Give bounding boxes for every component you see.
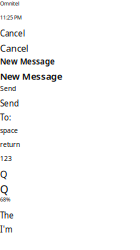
staticText: Cancel: [0, 42, 28, 54]
staticText: Send: [0, 84, 16, 93]
staticText: Q: [0, 168, 7, 180]
staticText: Q: [0, 182, 8, 196]
staticText: space: [0, 126, 18, 135]
staticText: 123: [0, 154, 12, 163]
staticText: 68%: [0, 196, 10, 203]
staticText: New Message: [0, 56, 55, 67]
staticText: To:: [0, 112, 11, 123]
staticText: Omnitel: [0, 0, 19, 7]
staticText: 11:25 PM: [0, 14, 22, 21]
staticText: I'm: [0, 224, 12, 235]
staticText: Send: [0, 98, 19, 109]
staticText: return: [0, 140, 20, 149]
staticText: Cancel: [0, 28, 25, 39]
staticText: The: [0, 210, 14, 221]
staticText: New Message: [0, 70, 62, 82]
